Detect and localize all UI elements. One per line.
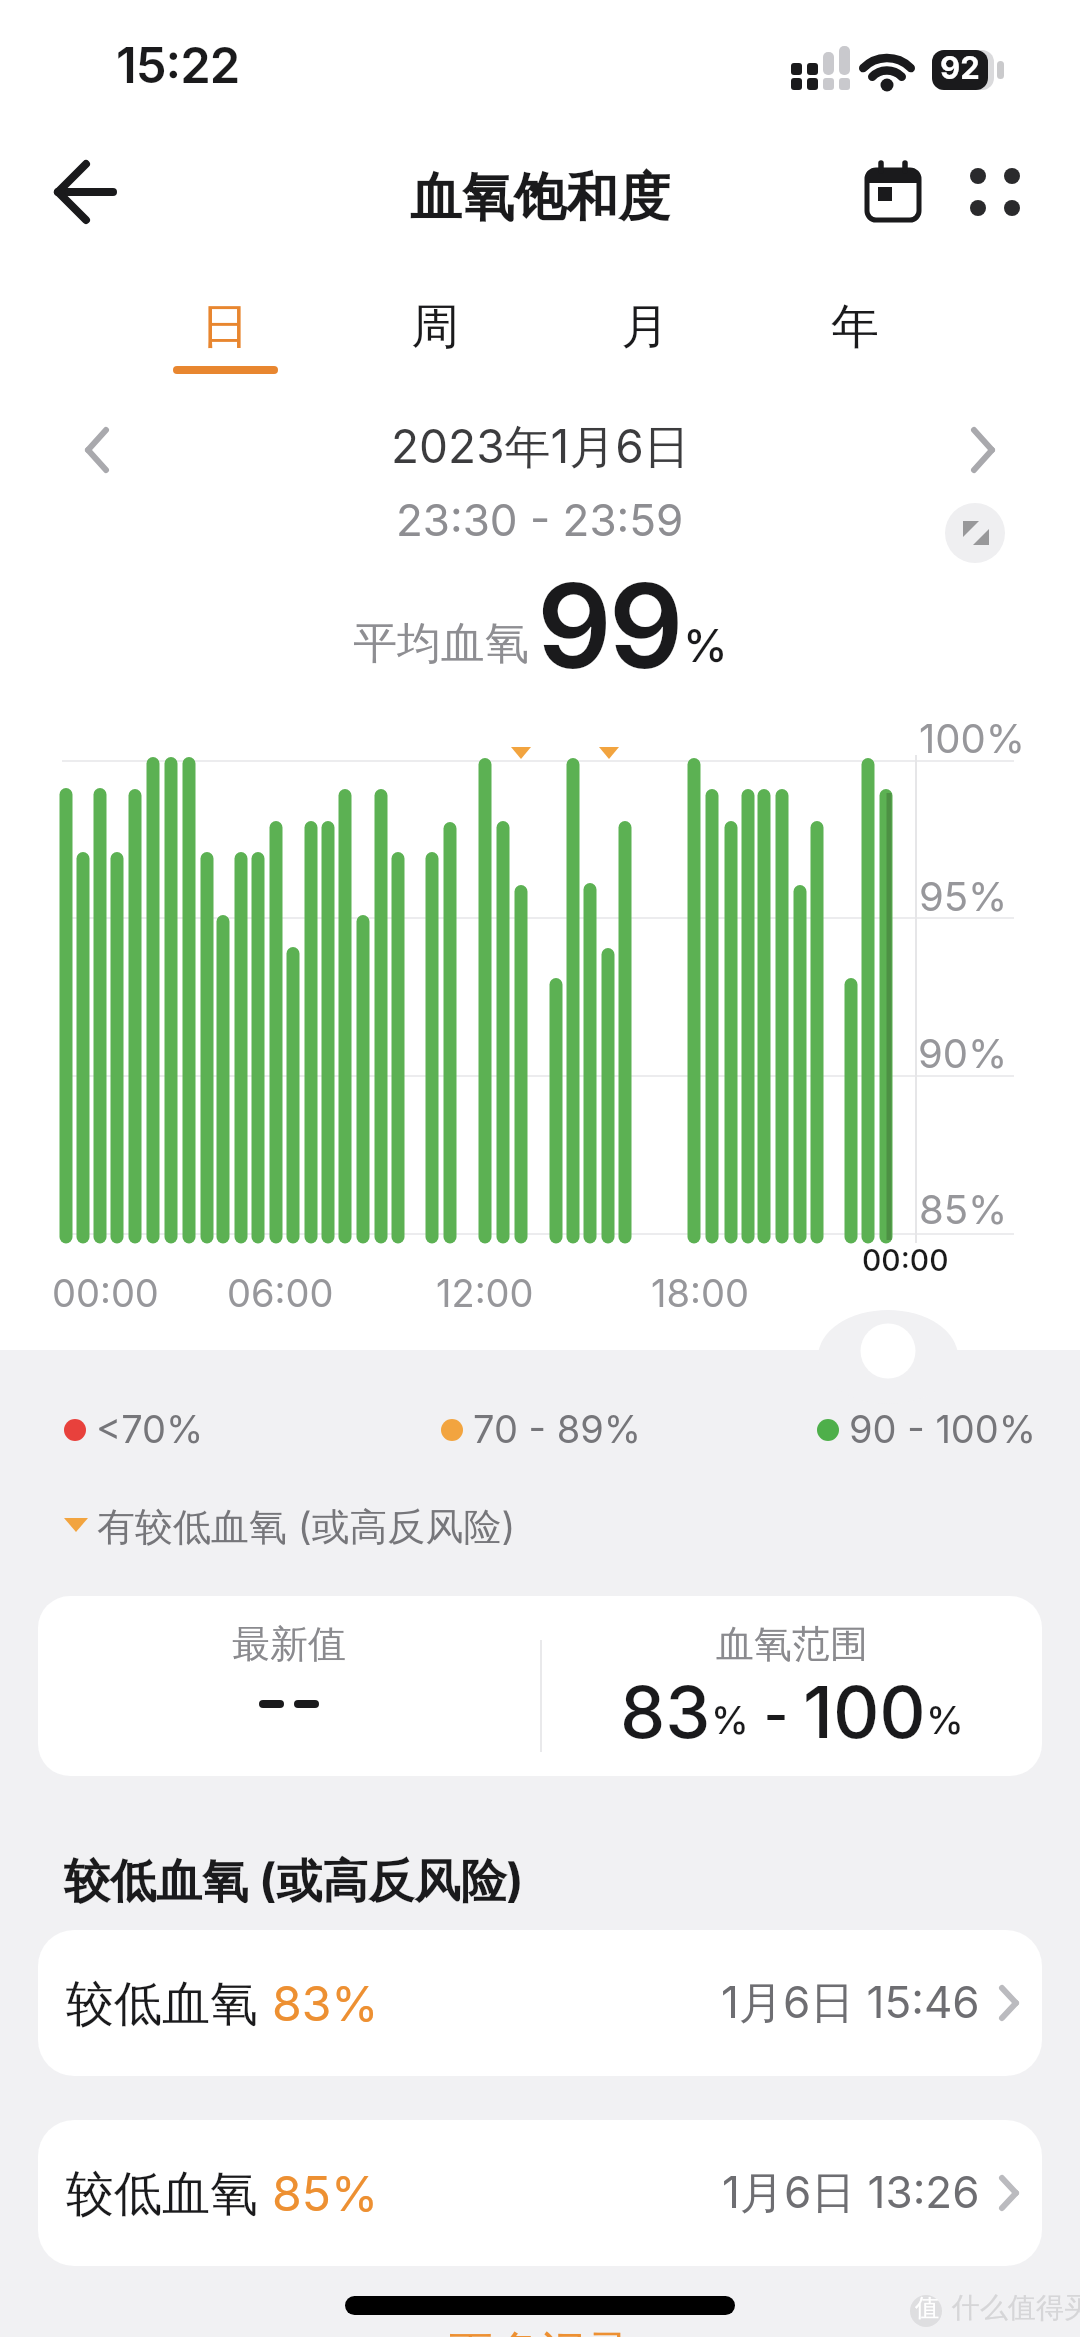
staticText: 1月6日 15:46 <box>721 1975 980 2031</box>
staticText: 83 <box>620 1668 711 1755</box>
staticText: 15:22 <box>116 36 240 95</box>
button[interactable]: 月 <box>540 296 750 358</box>
button[interactable] <box>958 148 1038 233</box>
staticText: 90% <box>918 1029 1008 1077</box>
staticText: 83% <box>272 1974 379 2032</box>
staticText: 85% <box>272 2164 379 2222</box>
staticText: 70 - 89% <box>473 1406 642 1452</box>
staticText: 有较低血氧 (或高反风险) <box>97 1503 516 1551</box>
staticText: 血氧饱和度 <box>410 165 670 231</box>
button[interactable] <box>35 150 135 235</box>
staticText: 85% <box>919 1185 1008 1233</box>
staticText: 23:30 - 23:59 <box>396 493 684 546</box>
staticText: 95% <box>919 872 1008 920</box>
staticText: - <box>749 1682 803 1747</box>
button[interactable] <box>950 413 1025 488</box>
button[interactable]: 较低血氧 <box>38 2120 1042 2266</box>
staticText: 更多记录 <box>448 2325 632 2337</box>
staticText: 血氧范围 <box>716 1620 868 1668</box>
staticText: 较低血氧 <box>66 2163 272 2224</box>
staticText: 最新值 <box>232 1620 346 1668</box>
staticText: % <box>683 618 728 672</box>
staticText: 12:00 <box>436 1270 534 1316</box>
button[interactable]: 较低血氧 <box>38 1930 1042 2076</box>
staticText: 100% <box>919 714 1026 762</box>
staticText: 99 <box>537 555 681 697</box>
staticText: 06:00 <box>227 1270 334 1316</box>
staticText: 较低血氧 (或高反风险) <box>64 1852 524 1910</box>
staticText: 年 <box>831 297 879 357</box>
button[interactable]: 年 <box>750 296 960 358</box>
staticText: % <box>926 1697 964 1743</box>
staticText: 日 <box>201 297 249 357</box>
button[interactable]: 周 <box>330 296 540 358</box>
staticText: 100 <box>803 1668 926 1755</box>
staticText: 90 - 100% <box>849 1406 1037 1452</box>
button[interactable]: 更多记录 <box>0 2325 1080 2337</box>
staticText: 92 <box>940 49 980 87</box>
staticText: 较低血氧 <box>66 1973 272 2034</box>
staticText: % <box>711 1697 749 1743</box>
staticText: 00:00 <box>52 1270 159 1316</box>
staticText: 周 <box>411 297 459 357</box>
button[interactable]: 日 <box>120 296 330 358</box>
staticText: 什么值得买 <box>952 2290 1080 2325</box>
staticText: 1月6日 13:26 <box>722 2165 980 2221</box>
staticText: 18:00 <box>651 1270 749 1316</box>
staticText: 月 <box>621 297 669 357</box>
button[interactable] <box>58 413 133 488</box>
staticText: 平均血氧 <box>353 616 529 671</box>
staticText: 值 <box>915 2293 939 2323</box>
button[interactable] <box>945 503 1005 563</box>
staticText: <70% <box>96 1406 204 1452</box>
button[interactable] <box>848 148 936 233</box>
staticText: 00:00 <box>862 1242 949 1278</box>
staticText: 2023年1月6日 <box>391 418 690 476</box>
